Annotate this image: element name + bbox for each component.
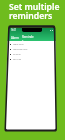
staticText: Tomorrow 08:00 bbox=[13, 48, 28, 51]
button[interactable]: Tomorrow 08:00 bbox=[6, 47, 56, 52]
staticText: Alarm bbox=[11, 36, 19, 40]
button[interactable]: Sat 10:00 bbox=[6, 57, 56, 62]
button[interactable]: Fri 06:30 bbox=[6, 52, 56, 57]
staticText: Set multiple reminders bbox=[9, 1, 60, 22]
staticText: 9:41 bbox=[11, 28, 17, 32]
staticText: Reminder bbox=[22, 35, 34, 41]
button[interactable]: Alarm bbox=[10, 36, 20, 40]
staticText: Sat 10:00 bbox=[13, 58, 22, 61]
button[interactable]: Today 09:00 bbox=[6, 42, 56, 47]
staticText: Fri 06:30 bbox=[13, 53, 21, 56]
staticText: Today 09:00 bbox=[13, 43, 24, 46]
button[interactable]: Reminder bbox=[22, 35, 34, 41]
